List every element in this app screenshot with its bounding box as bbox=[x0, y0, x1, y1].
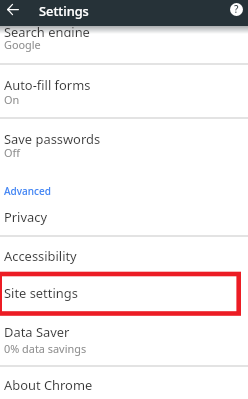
button[interactable] bbox=[0, 366, 248, 399]
button[interactable] bbox=[0, 235, 248, 271]
staticText: Site settings bbox=[4, 284, 78, 302]
button[interactable] bbox=[0, 26, 248, 63]
staticText: Save passwords bbox=[4, 130, 101, 148]
staticText: Off bbox=[4, 145, 20, 160]
staticText: Google bbox=[4, 37, 41, 52]
button[interactable] bbox=[0, 271, 248, 316]
staticText: Settings bbox=[39, 2, 89, 19]
button[interactable] bbox=[0, 203, 248, 235]
staticText: Accessibility bbox=[4, 247, 77, 265]
staticText: Search engine bbox=[4, 26, 90, 37]
button[interactable] bbox=[0, 63, 248, 117]
button[interactable]: Help bbox=[227, 0, 245, 18]
staticText: ? bbox=[234, 2, 239, 16]
staticText: Auto-fill forms bbox=[4, 76, 91, 94]
staticText: Data Saver bbox=[4, 323, 70, 341]
staticText: 0% data savings bbox=[4, 341, 87, 356]
staticText: On bbox=[4, 92, 20, 107]
staticText: About Chrome bbox=[4, 376, 93, 394]
button[interactable] bbox=[0, 316, 248, 366]
button[interactable] bbox=[0, 117, 248, 174]
button[interactable]: Back bbox=[1, 0, 24, 23]
staticText: Privacy bbox=[4, 208, 47, 226]
staticText: Advanced bbox=[4, 184, 51, 198]
